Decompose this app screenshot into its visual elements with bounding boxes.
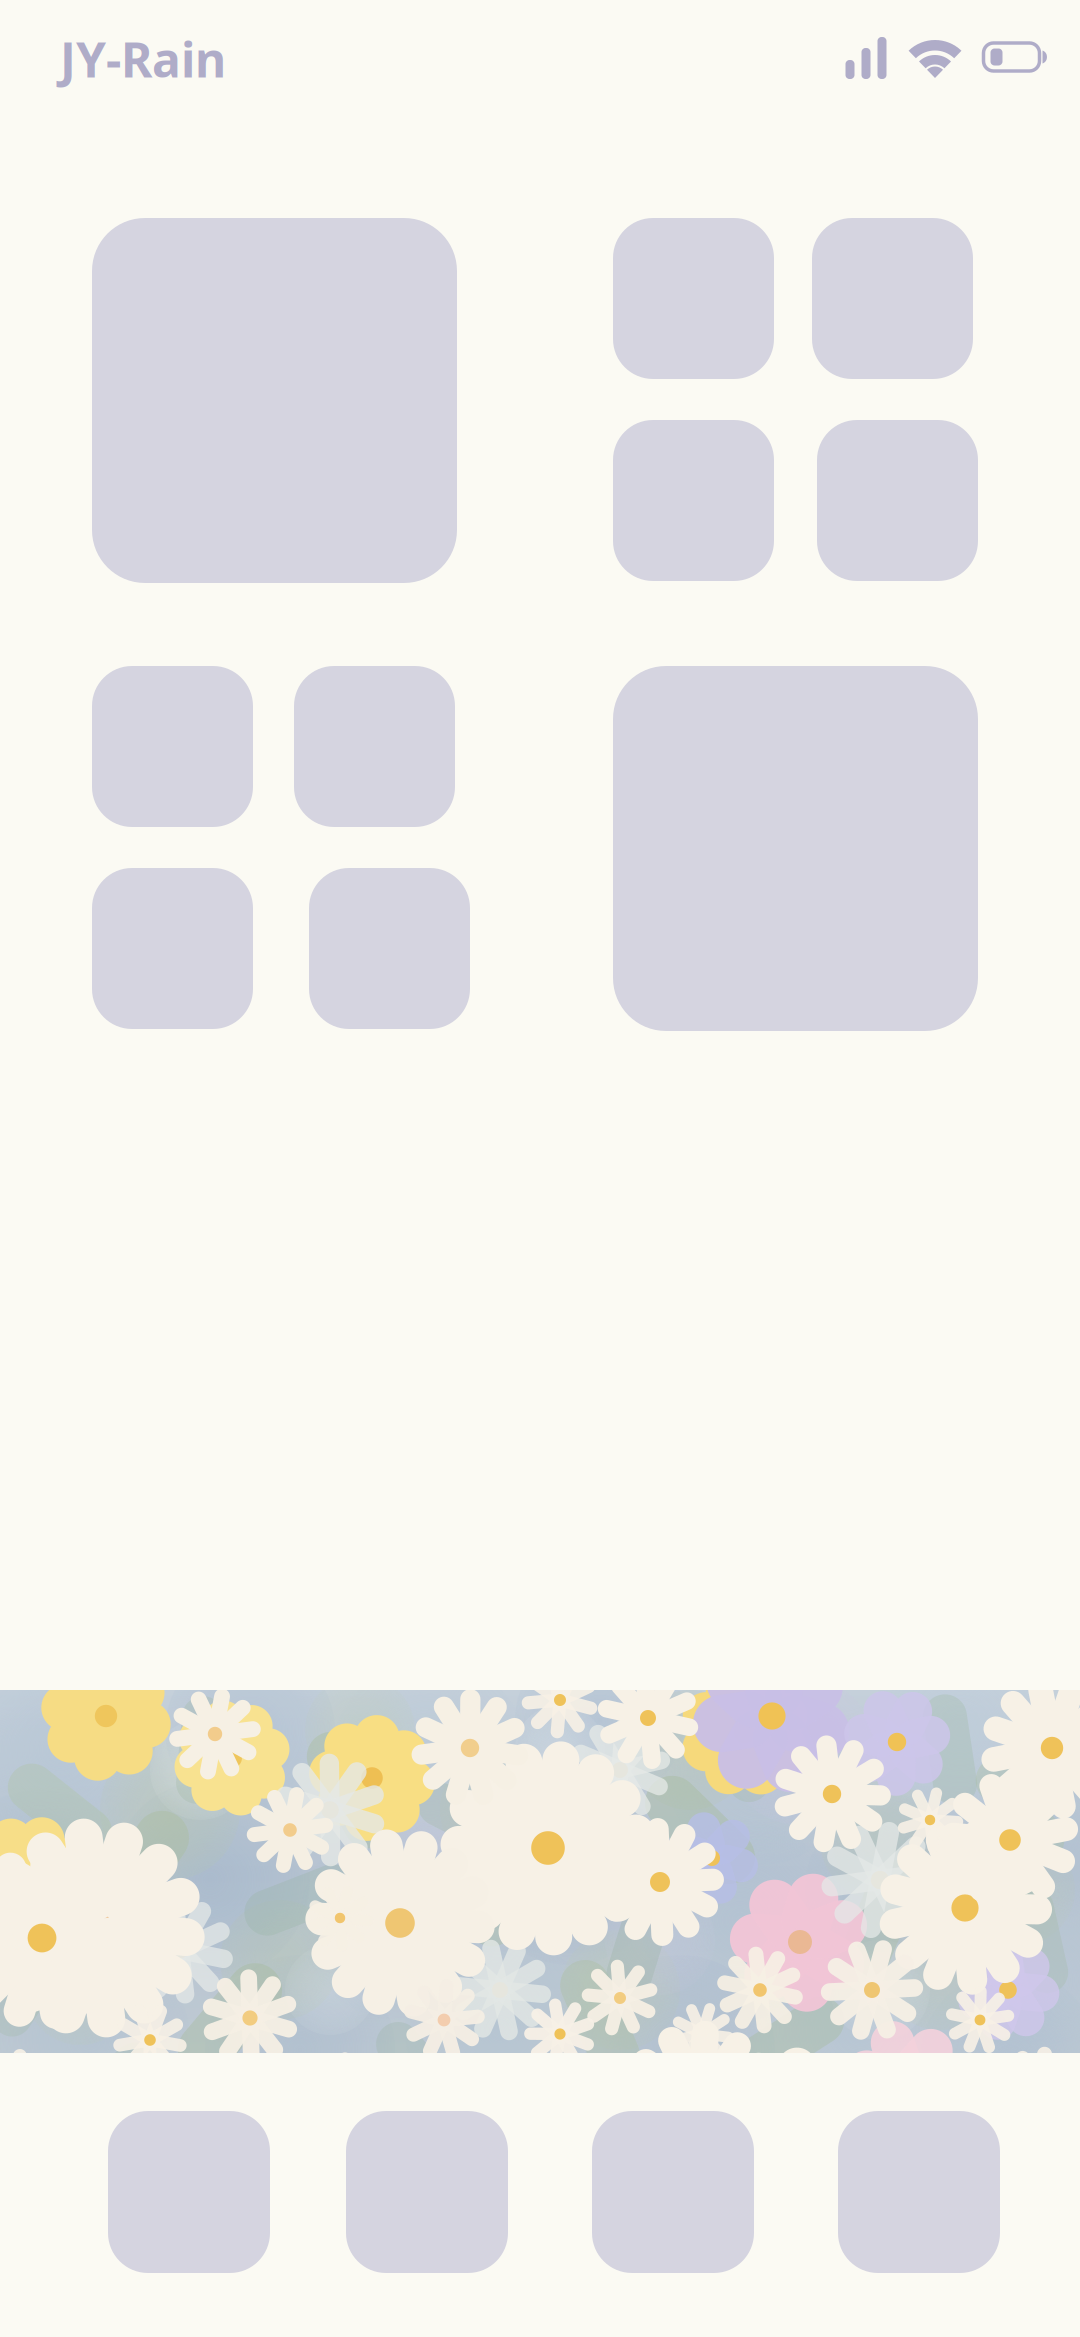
button[interactable]: App 1 [613,218,774,379]
button[interactable]: App 6 [294,666,455,827]
button[interactable]: App 7 [92,868,253,1029]
button[interactable]: Widget 1 [92,218,457,583]
button[interactable]: App 5 [92,666,253,827]
button[interactable]: App 8 [309,868,470,1029]
button[interactable]: Widget 2 [613,666,978,1031]
button[interactable]: Dock 3 [592,2111,754,2273]
staticText: JY-Rain [60,27,226,91]
button[interactable]: Dock 2 [346,2111,508,2273]
button[interactable]: Dock 1 [108,2111,270,2273]
button[interactable]: App 4 [817,420,978,581]
button[interactable]: App 3 [613,420,774,581]
button[interactable]: App 2 [812,218,973,379]
button[interactable]: Dock 4 [838,2111,1000,2273]
